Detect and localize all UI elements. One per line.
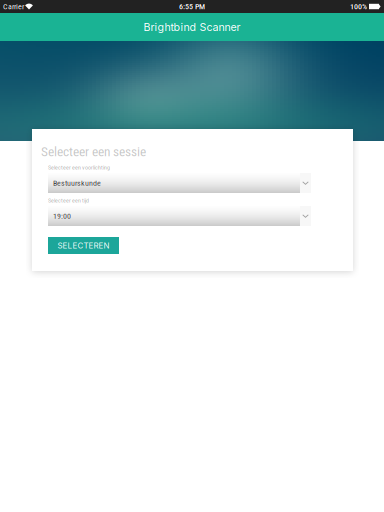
staticText: SELECTEREN	[57, 241, 109, 250]
staticText: Carrier	[3, 2, 24, 11]
staticText: Selecteer een voorlichting	[48, 164, 110, 171]
button[interactable]: SELECTEREN	[48, 237, 119, 254]
staticText: Selecteer een sessie	[41, 144, 146, 160]
staticText: Selecteer een tijd	[48, 197, 89, 204]
staticText: 100%	[350, 2, 367, 11]
staticText: Brightbind Scanner	[143, 20, 240, 33]
staticText: 19:00	[53, 211, 71, 221]
staticText: Bestuurskunde	[53, 178, 101, 188]
button[interactable]: 19:00	[48, 206, 311, 226]
button[interactable]: Bestuurskunde	[48, 173, 311, 193]
staticText: 6:55 PM	[179, 2, 205, 11]
